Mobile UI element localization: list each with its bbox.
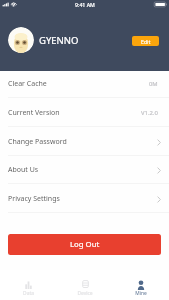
button[interactable]: Privacy Settings [0,184,169,213]
staticText: Edit [141,38,151,45]
staticText: About Us [8,165,39,175]
staticText: 9:41 AM [75,1,95,8]
button[interactable]: Change Password [0,127,169,156]
staticText: Mine [135,290,147,297]
staticText: Change Password [8,137,67,147]
button[interactable]: About Us [0,155,169,184]
staticText: Current Version [8,108,60,118]
staticText: Clear Cache [8,79,47,89]
button[interactable]: Log Out [8,234,161,255]
button[interactable]: Edit [132,36,159,46]
staticText: Device [77,290,93,297]
button[interactable]: Device [57,270,113,300]
button[interactable]: Current Version [0,98,169,127]
staticText: Privacy Settings [8,194,60,204]
button[interactable]: Data [0,270,57,300]
button[interactable]: Mine [113,270,169,300]
button[interactable]: Clear Cache [0,69,169,98]
staticText: 0M [149,80,158,88]
button[interactable]: Profile photo [8,27,34,53]
staticText: Data [23,290,34,297]
staticText: V1.2.0 [141,109,158,117]
staticText: GYENNO [39,34,79,47]
staticText: Log Out [70,239,100,250]
